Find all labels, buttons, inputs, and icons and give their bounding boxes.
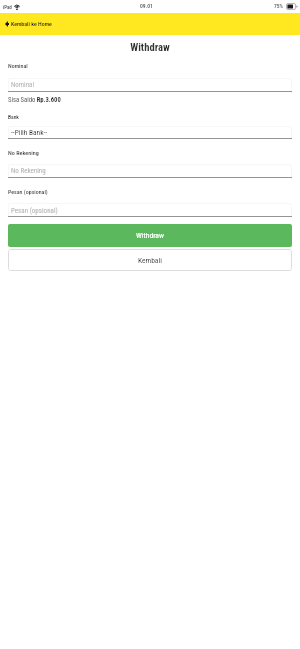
- button[interactable]: No Rekening: [8, 164, 292, 178]
- button[interactable]: Pesan (opsional): [8, 203, 292, 217]
- staticText: 75%: [274, 3, 284, 10]
- other: Wi-Fi: [14, 3, 20, 10]
- staticText: Pesan (opsional): [8, 189, 48, 196]
- staticText: Kembali ke Home: [11, 21, 52, 28]
- staticText: Pesan (opsional): [11, 206, 58, 214]
- staticText: Kembali: [138, 256, 162, 265]
- button[interactable]: Withdraw: [8, 224, 292, 247]
- staticText: No Rekening: [8, 149, 39, 156]
- button[interactable]: Nominal: [8, 78, 292, 92]
- button[interactable]: Bank: [8, 126, 292, 139]
- staticText: Nominal: [11, 81, 34, 89]
- other: Battery 75 percent: [286, 3, 297, 10]
- staticText: Withdraw: [136, 231, 164, 240]
- button[interactable]: Kembali: [8, 249, 292, 271]
- staticText: Nominal: [8, 62, 28, 69]
- staticText: 09.01: [140, 3, 153, 10]
- staticText: iPad: [3, 4, 12, 10]
- button[interactable]: Kembali ke Home: [0, 13, 300, 35]
- staticText: --Pilih Bank--: [11, 128, 48, 137]
- staticText: Withdraw: [0, 41, 300, 54]
- staticText: Bank: [8, 114, 19, 120]
- staticText: No Rekening: [11, 167, 46, 175]
- staticText: Sisa Saldo Rp.3.600: [8, 96, 61, 104]
